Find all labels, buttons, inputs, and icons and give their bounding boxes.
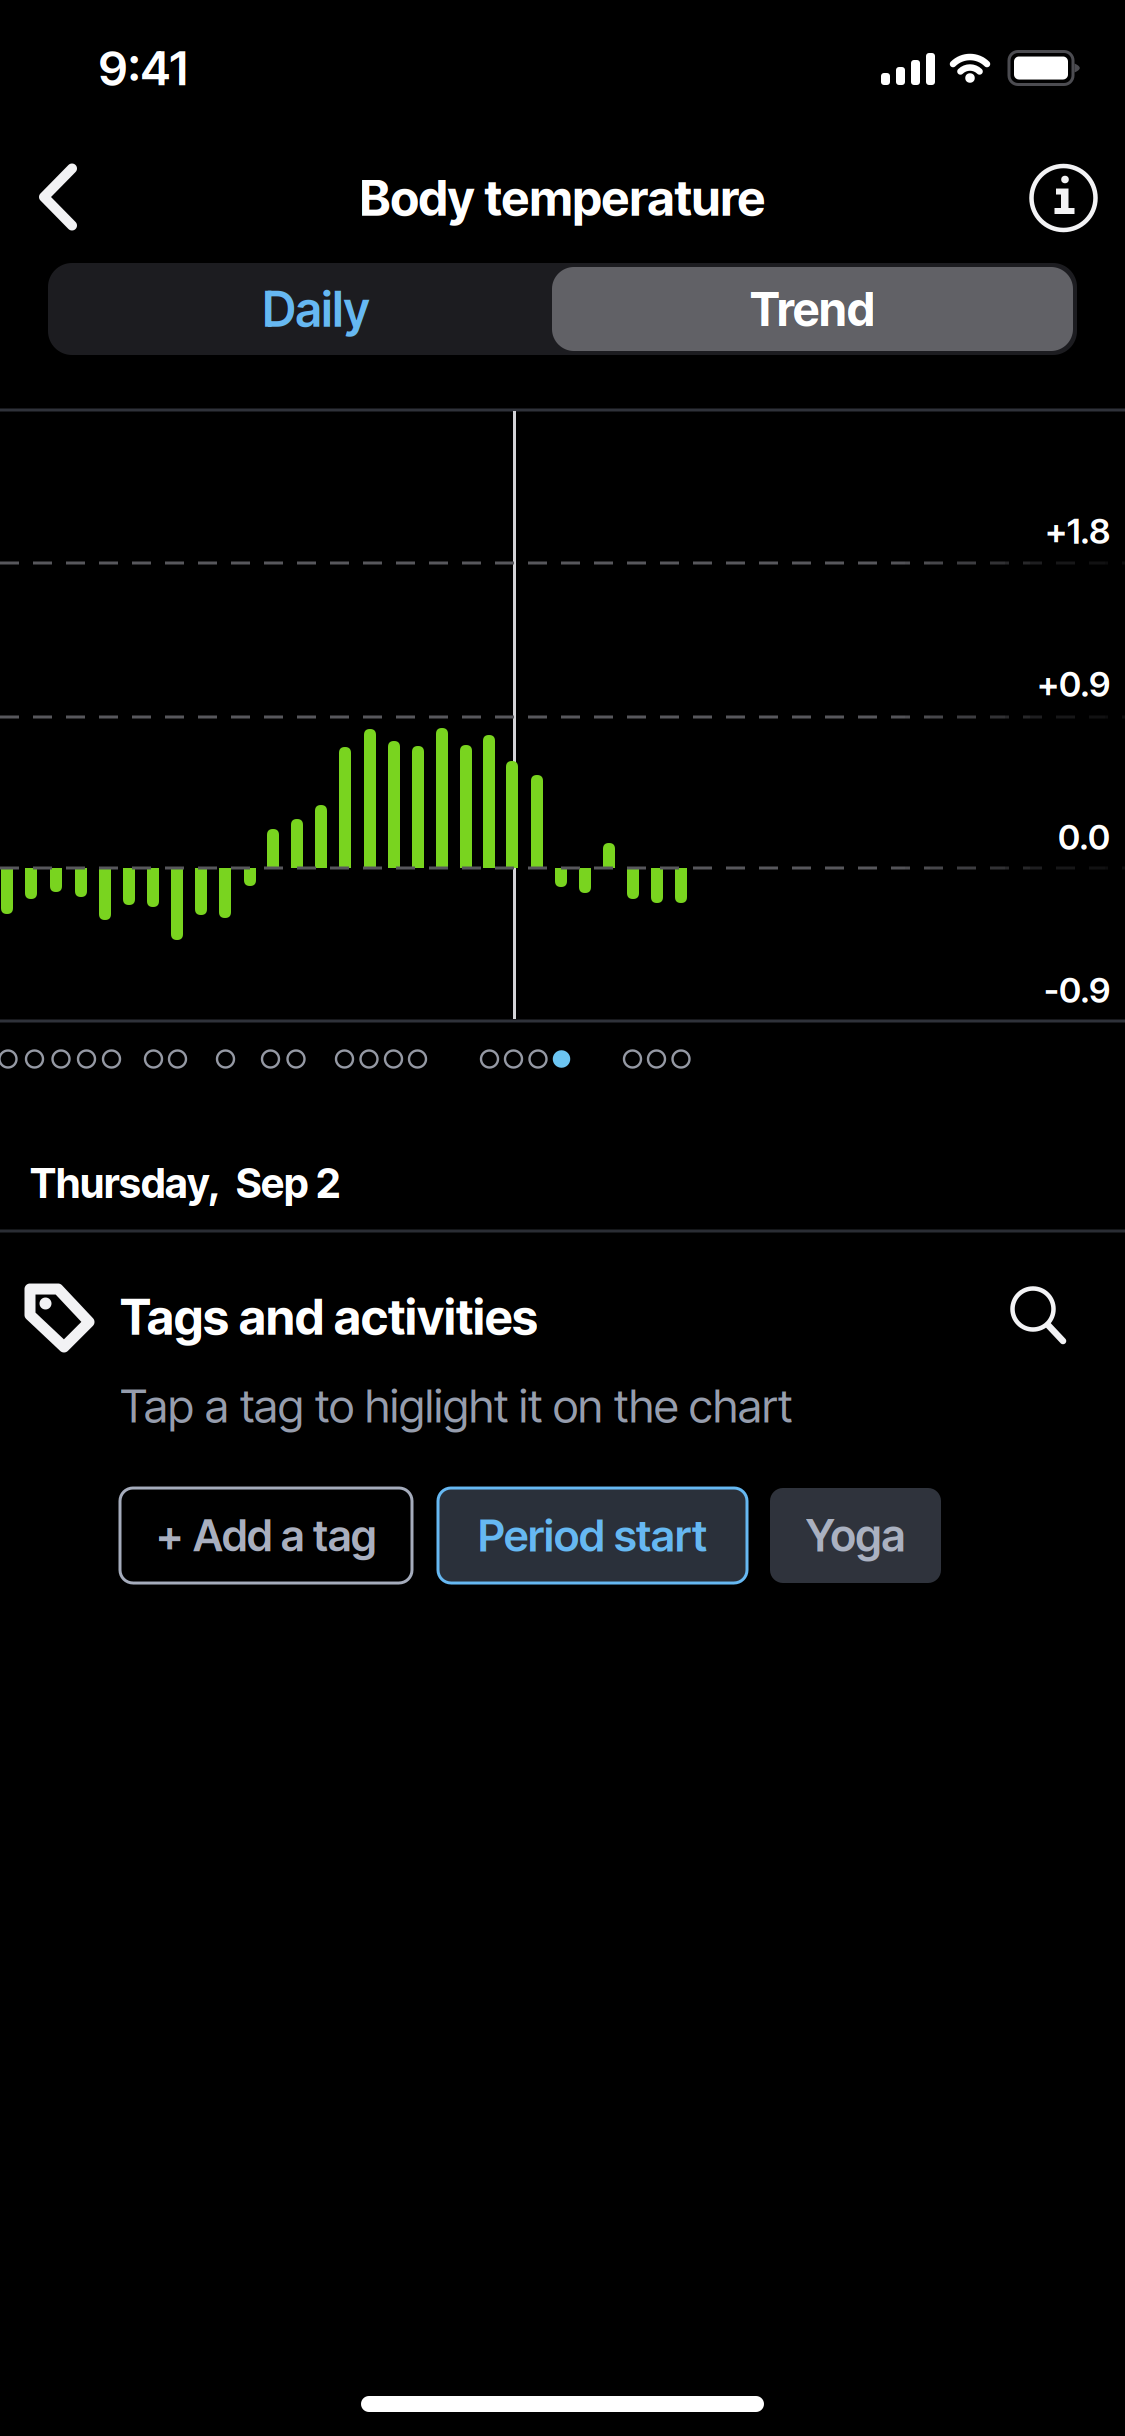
- button[interactable]: Back: [28, 162, 100, 232]
- staticText: +1.8: [1045, 510, 1110, 552]
- staticText: Tap a tag to higlight it on the chart: [120, 1378, 792, 1434]
- staticText: + Add a tag: [156, 1509, 376, 1562]
- staticText: Trend: [750, 281, 875, 337]
- button[interactable]: Trend: [552, 267, 1073, 351]
- staticText: Yoga: [805, 1509, 905, 1562]
- staticText: -0.9: [1044, 969, 1110, 1011]
- staticText: Tags and activities: [120, 1287, 538, 1346]
- button[interactable]: Info: [1030, 164, 1097, 231]
- button[interactable]: Period start: [438, 1488, 747, 1583]
- staticText: 0.0: [1058, 816, 1110, 858]
- button[interactable]: Search: [1005, 1280, 1071, 1346]
- staticText: Thursday, Sep 2: [30, 1158, 340, 1208]
- staticText: Period start: [478, 1509, 707, 1562]
- button[interactable]: Daily: [66, 267, 566, 351]
- staticText: +0.9: [1037, 663, 1110, 705]
- button[interactable]: + Add a tag: [120, 1488, 412, 1583]
- staticText: Daily: [262, 280, 369, 338]
- staticText: 9:41: [98, 39, 187, 97]
- staticText: Body temperature: [359, 168, 765, 228]
- button[interactable]: Yoga: [770, 1488, 941, 1583]
